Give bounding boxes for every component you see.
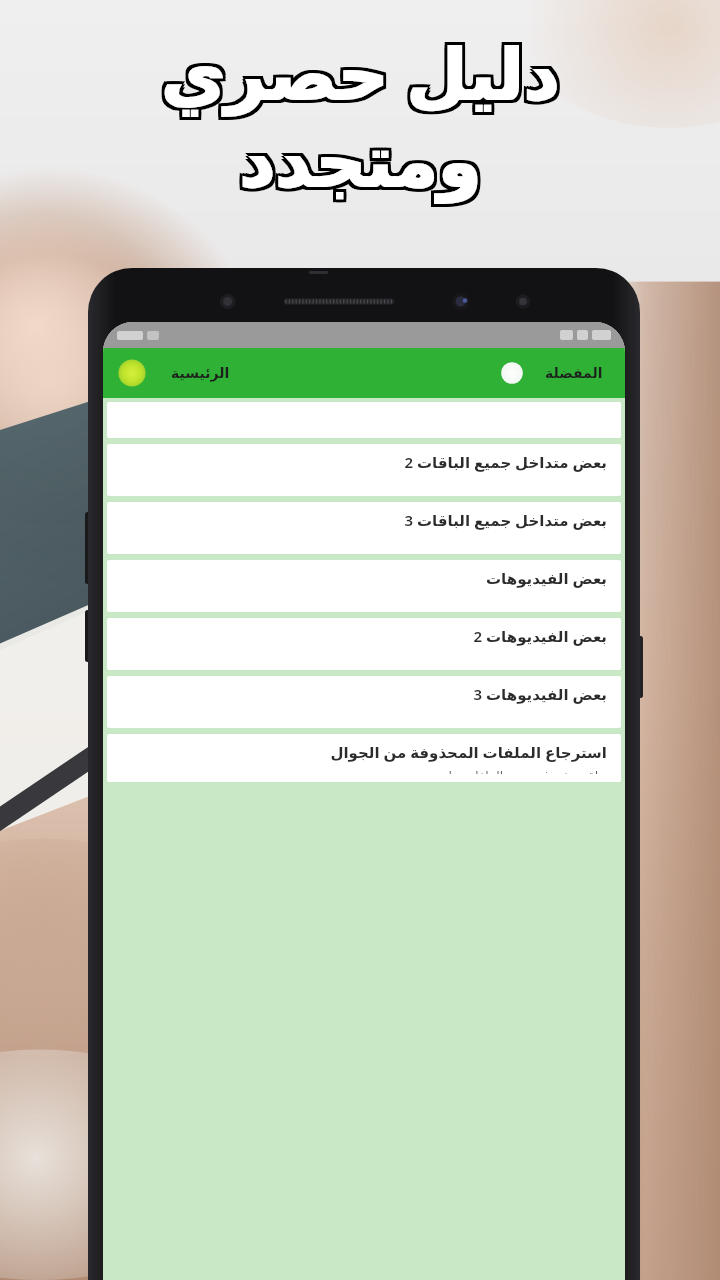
button[interactable]: استرجاع الملفات المحذوفة من الجوال: [107, 734, 621, 782]
staticText: دليل حصري: [161, 27, 560, 122]
button[interactable]: Menu: [115, 356, 149, 390]
button[interactable]: بعض متداخل جميع الباقات 2: [107, 444, 621, 496]
button[interactable]: الرئيسية: [165, 359, 236, 387]
staticText: دليل حصري: [164, 24, 563, 119]
button[interactable]: بعض متداخل جميع الباقات 3: [107, 502, 621, 554]
button[interactable]: المفضلة: [539, 359, 609, 387]
staticText: المفضلة: [545, 365, 603, 381]
staticText: ومتجدد: [239, 118, 482, 199]
staticText: بعض متداخل جميع الباقات 3: [404, 510, 607, 530]
staticText: ومتجدد: [239, 124, 482, 205]
staticText: دليل حصري: [158, 27, 557, 122]
staticText: و لقد بحثت في جميع الملفات و لم: [440, 767, 607, 774]
button[interactable]: بعض الفيديوهات 2: [107, 618, 621, 670]
button[interactable]: Search: [497, 358, 527, 388]
staticText: استرجاع الملفات المحذوفة من الجوال: [330, 742, 607, 762]
staticText: دليل حصري: [164, 21, 563, 116]
staticText: بعض الفيديوهات: [486, 568, 607, 588]
staticText: ومتجدد: [236, 121, 479, 202]
staticText: ومتجدد: [236, 118, 479, 199]
staticText: دليل حصري: [158, 21, 557, 116]
staticText: ومتجدد: [242, 118, 485, 199]
staticText: دليل حصري: [161, 21, 560, 116]
staticText: دليل حصري: [161, 24, 560, 119]
staticText: ومتجدد: [236, 124, 479, 205]
staticText: دليل حصري: [158, 24, 557, 119]
staticText: ومتجدد: [242, 124, 485, 205]
staticText: دليل حصري: [164, 27, 563, 122]
staticText: الرئيسية: [171, 365, 230, 381]
staticText: ومتجدد: [242, 121, 485, 202]
staticText: بعض الفيديوهات 2: [473, 626, 607, 646]
button[interactable]: بعض الفيديوهات 3: [107, 676, 621, 728]
staticText: ومتجدد: [239, 121, 482, 202]
button[interactable]: بعض الفيديوهات: [107, 560, 621, 612]
staticText: بعض الفيديوهات 3: [473, 684, 607, 704]
staticText: بعض متداخل جميع الباقات 2: [404, 452, 607, 472]
